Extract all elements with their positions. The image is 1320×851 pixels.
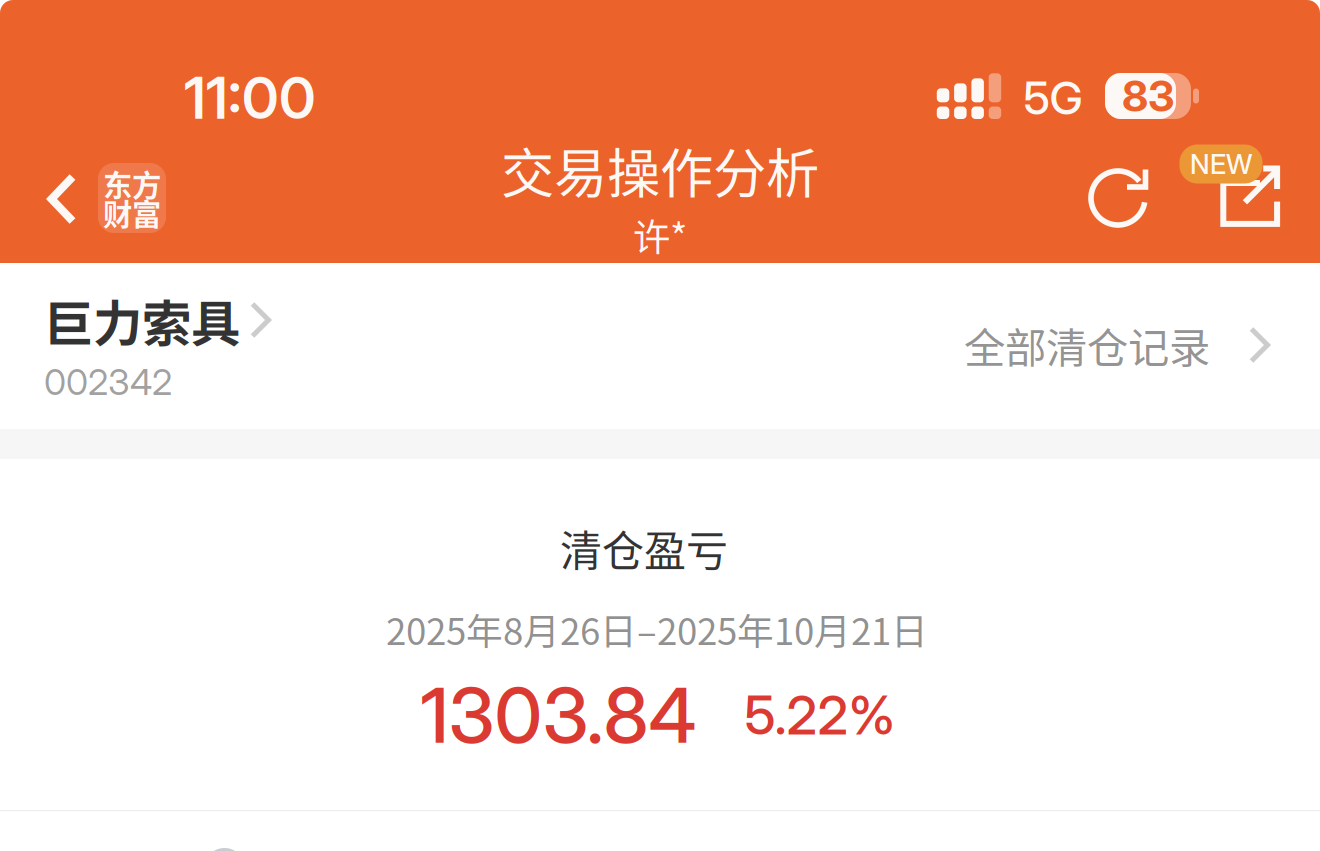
button[interactable]: 巨力索具 [0, 281, 440, 411]
button[interactable]: 刷新 [1082, 161, 1156, 235]
staticText: 5G [1023, 71, 1082, 125]
staticText: 002342 [44, 360, 172, 404]
staticText: 交易操作分析 [501, 131, 819, 209]
staticText: 1303.84 [420, 669, 696, 761]
staticText: 东方 [103, 162, 161, 205]
staticText: 清仓盈亏 [560, 518, 728, 578]
staticText: 83 [1122, 70, 1174, 122]
staticText: 财富 [103, 191, 161, 234]
staticText: 5.22% [744, 683, 895, 747]
button[interactable]: 东方财富 [98, 163, 166, 233]
button[interactable]: 全部清仓记录 [938, 290, 1316, 400]
button[interactable]: 分享 [1213, 157, 1291, 235]
staticText: 许* [633, 208, 687, 262]
staticText: NEW [1190, 147, 1252, 181]
staticText: 2025年8月26日–2025年10月21日 [386, 602, 928, 656]
button[interactable]: 返回 [31, 162, 93, 236]
staticText: 巨力索具 [44, 284, 240, 356]
staticText: 11:00 [184, 63, 316, 133]
staticText: 全部清仓记录 [964, 315, 1210, 375]
